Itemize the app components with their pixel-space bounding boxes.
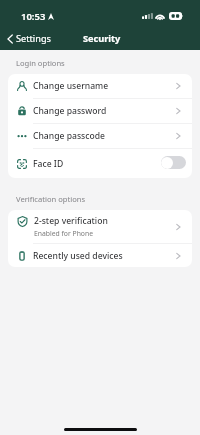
button[interactable]: Recently used devices bbox=[8, 244, 192, 267]
button[interactable]: 2-step verification bbox=[8, 210, 192, 243]
staticText: Change passcode bbox=[33, 130, 105, 142]
button[interactable]: Change username bbox=[8, 74, 192, 98]
staticText: 10:53 bbox=[21, 10, 46, 23]
button[interactable]: Face ID bbox=[8, 149, 192, 178]
staticText: Enabled for Phone bbox=[34, 229, 93, 238]
button[interactable]: Settings bbox=[0, 28, 57, 49]
staticText: Security bbox=[83, 32, 121, 45]
button[interactable]: Face ID toggle bbox=[161, 156, 186, 169]
staticText: Verification options bbox=[16, 194, 86, 204]
staticText: Recently used devices bbox=[33, 250, 123, 262]
staticText: Change username bbox=[33, 80, 109, 92]
staticText: Change password bbox=[33, 105, 107, 117]
button[interactable]: Change passcode bbox=[8, 124, 192, 148]
staticText: Settings bbox=[16, 32, 51, 45]
staticText: Login options bbox=[16, 58, 65, 68]
staticText: 2-step verification bbox=[34, 215, 108, 227]
staticText: Face ID bbox=[33, 158, 161, 170]
button[interactable]: Change password bbox=[8, 99, 192, 123]
